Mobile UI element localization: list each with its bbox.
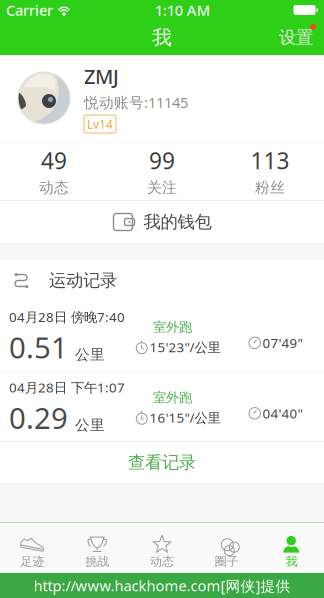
staticText: 室外跑 <box>153 389 192 406</box>
staticText: 关注 <box>147 178 177 196</box>
staticText: 04月28日 傍晚7:40 <box>9 308 125 326</box>
staticText: 悦动账号:11145 <box>84 93 188 112</box>
staticText: 粉丝 <box>255 178 285 196</box>
staticText: 0.51 <box>9 328 68 367</box>
staticText: 公里 <box>75 346 105 364</box>
button[interactable]: 我 <box>259 523 324 573</box>
staticText: http://www.hackhome.com[网侠]提供 <box>33 576 290 595</box>
button[interactable]: 圈子 <box>194 523 259 573</box>
staticText: 49 <box>41 145 67 175</box>
staticText: 我 <box>152 25 172 50</box>
staticText: 15'23"/公里 <box>149 338 220 356</box>
button[interactable]: 04月28日 傍晚7:40 <box>0 301 324 371</box>
button[interactable]: 挑战 <box>65 523 130 573</box>
staticText: 设置 <box>279 27 313 48</box>
staticText: 圈子 <box>215 554 239 569</box>
staticText: 我的钱包 <box>143 211 211 233</box>
staticText: 07'49" <box>262 334 302 352</box>
button[interactable]: 04月28日 下午1:07 <box>0 371 324 441</box>
staticText: 04'40" <box>262 404 302 422</box>
button[interactable]: 足迹 <box>0 523 65 573</box>
staticText: 动态 <box>39 178 69 196</box>
staticText: 足迹 <box>20 554 44 569</box>
button[interactable]: 99 <box>108 141 216 200</box>
staticText: 室外跑 <box>153 319 192 335</box>
button[interactable]: 查看记录 <box>0 442 324 483</box>
button[interactable]: 动态 <box>130 523 194 573</box>
staticText: 99 <box>149 145 175 175</box>
staticText: 04月28日 下午1:07 <box>9 378 125 396</box>
button[interactable]: 49 <box>0 141 108 200</box>
staticText: 我 <box>286 554 298 569</box>
button[interactable]: 我的钱包 <box>0 201 324 243</box>
button[interactable]: 设置 <box>265 20 324 55</box>
staticText: ZMJ <box>84 63 119 90</box>
staticText: 挑战 <box>85 554 109 569</box>
staticText: 公里 <box>75 416 105 434</box>
staticText: Carrier <box>6 0 53 20</box>
staticText: 113 <box>250 145 289 175</box>
staticText: Lv14 <box>87 116 113 132</box>
staticText: 动态 <box>150 554 174 569</box>
button[interactable]: ZMJ <box>0 55 324 141</box>
staticText: 运动记录 <box>49 270 117 291</box>
staticText: 1:10 AM <box>155 0 210 20</box>
button[interactable]: 113 <box>216 141 324 200</box>
staticText: 16'15"/公里 <box>149 409 220 426</box>
staticText: 0.29 <box>9 398 68 437</box>
staticText: 查看记录 <box>128 452 196 473</box>
